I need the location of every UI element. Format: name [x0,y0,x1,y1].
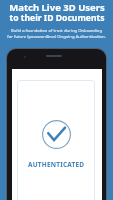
staticText: Match Live 3D Users [9,1,105,14]
staticText: Build a foundation of trust during Onboa… [11,28,102,34]
staticText: AUTHENTICATED [28,160,85,169]
button[interactable]: Authenticated [17,80,95,200]
staticText: for future (passwordless) Ongoing Authen… [7,34,106,40]
staticText: to their ID Documents [9,12,105,24]
other: Authenticated [42,120,71,149]
